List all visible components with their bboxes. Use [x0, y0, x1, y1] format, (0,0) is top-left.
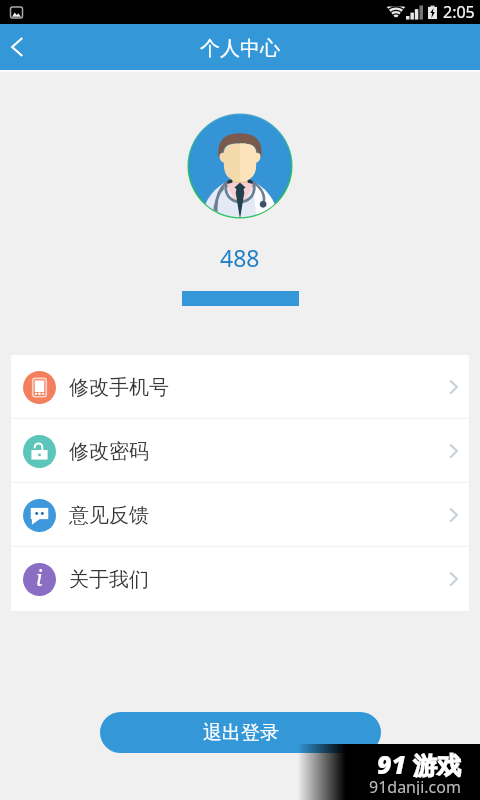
- staticText: 个人中心: [200, 36, 280, 61]
- staticText: 488: [220, 242, 260, 273]
- button[interactable]: i: [11, 547, 469, 611]
- staticText: 游戏: [413, 751, 461, 781]
- button[interactable]: 意见反馈: [11, 483, 469, 547]
- staticText: 2:05: [443, 1, 475, 23]
- staticText: 修改密码: [69, 439, 149, 464]
- staticText: 修改手机号: [69, 375, 169, 400]
- button[interactable]: 修改密码: [11, 419, 469, 483]
- staticText: 91danji.com: [369, 776, 461, 795]
- staticText: i: [36, 564, 43, 593]
- staticText: 意见反馈: [69, 503, 149, 528]
- button[interactable]: 修改手机号: [11, 355, 469, 419]
- staticText: 退出登录: [203, 721, 279, 745]
- button[interactable]: Back: [0, 24, 46, 70]
- staticText: 91: [377, 747, 407, 781]
- button[interactable]: 退出登录: [100, 712, 381, 753]
- staticText: 关于我们: [69, 567, 149, 592]
